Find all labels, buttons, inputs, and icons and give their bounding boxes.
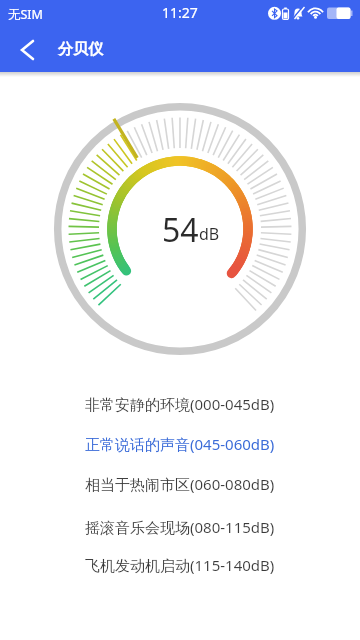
button[interactable]: 非常安静的环境(000-045dB) bbox=[0, 384, 360, 424]
button[interactable]: 相当于热闹市区(060-080dB) bbox=[0, 464, 360, 504]
staticText: 分贝仪 bbox=[58, 40, 103, 59]
button[interactable] bbox=[12, 33, 44, 65]
staticText: 飞机发动机启动(115-140dB) bbox=[85, 555, 275, 575]
staticText: 非常安静的环境(000-045dB) bbox=[85, 394, 275, 414]
staticText: 摇滚音乐会现场(080-115dB) bbox=[85, 517, 275, 537]
staticText: 54 bbox=[162, 208, 199, 252]
button[interactable]: 正常说话的声音(045-060dB) bbox=[0, 424, 360, 464]
staticText: 11:27 bbox=[162, 3, 198, 22]
staticText: 正常说话的声音(045-060dB) bbox=[85, 434, 275, 454]
staticText: 相当于热闹市区(060-080dB) bbox=[85, 474, 275, 494]
button[interactable]: 飞机发动机启动(115-140dB) bbox=[0, 545, 360, 585]
staticText: 无SIM bbox=[8, 6, 43, 23]
staticText: dB bbox=[199, 223, 220, 245]
button[interactable]: 摇滚音乐会现场(080-115dB) bbox=[0, 507, 360, 547]
